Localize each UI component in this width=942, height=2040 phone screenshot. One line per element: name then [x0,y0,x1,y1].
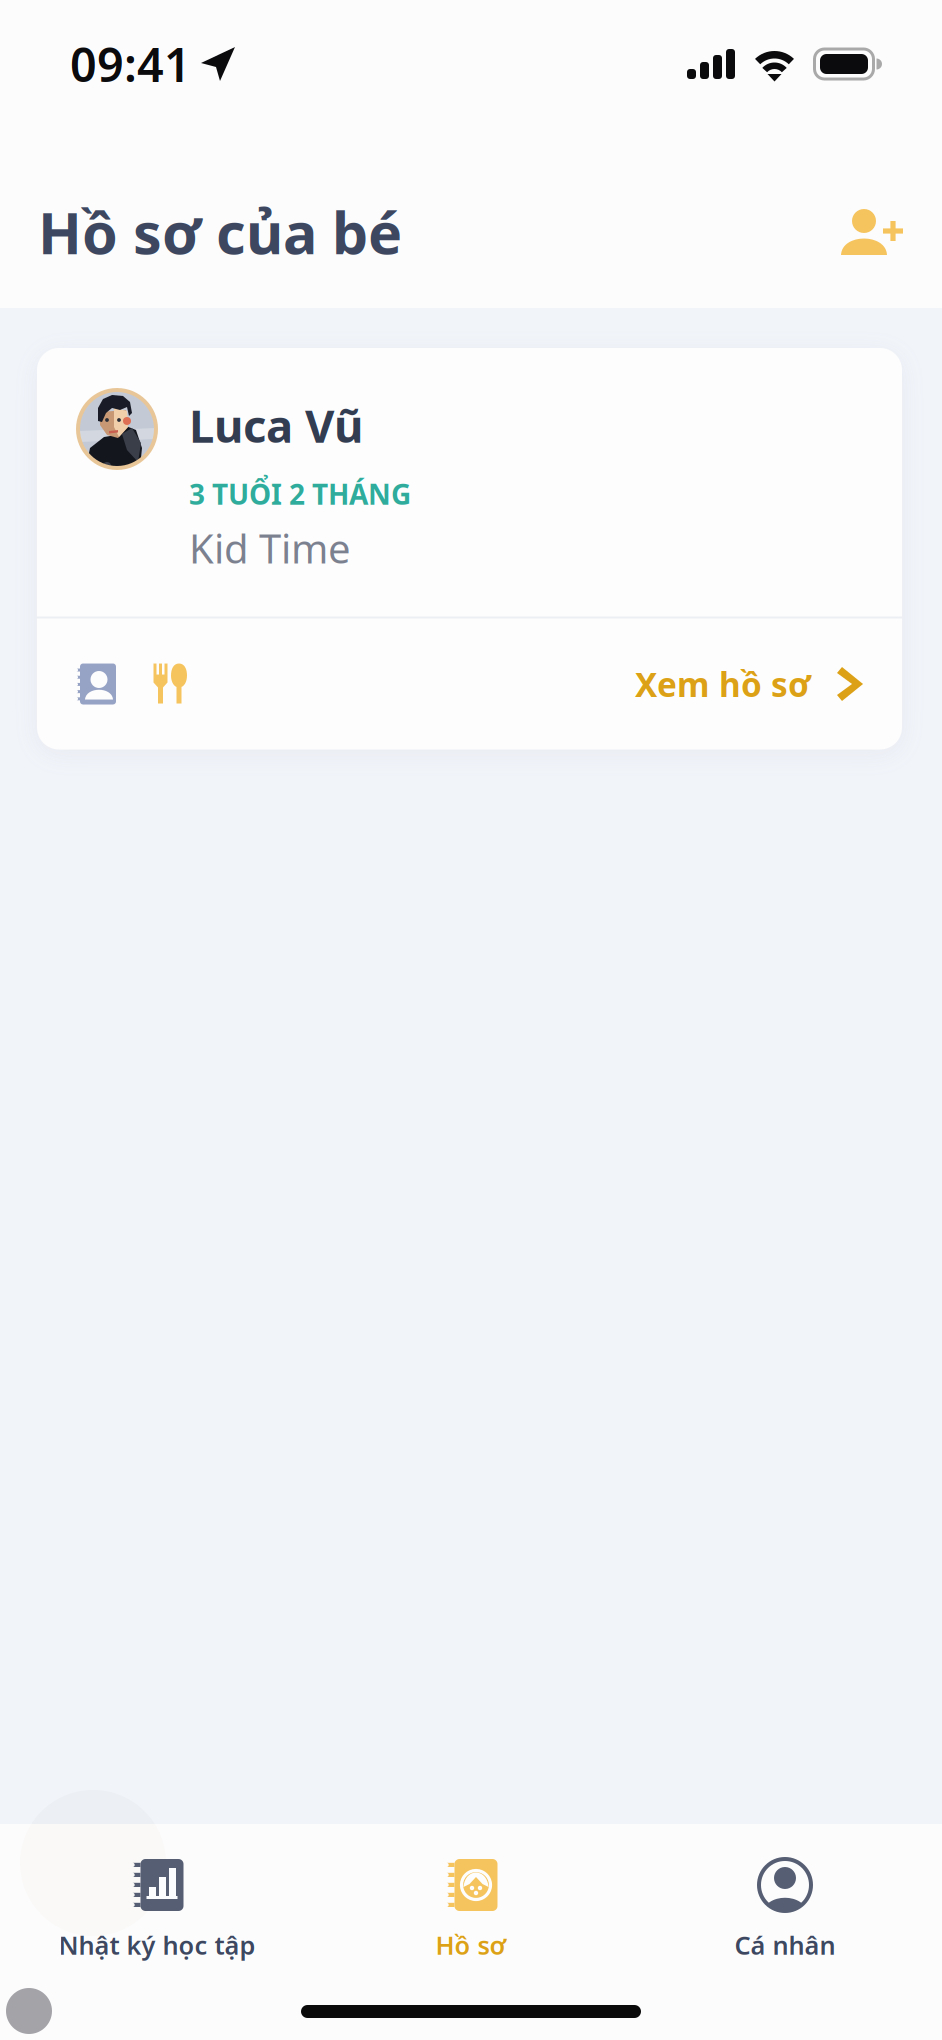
button[interactable]: Nhật ký học tập [0,1824,314,1981]
button[interactable]: Luca Vũ [37,348,902,616]
button[interactable]: Meals [153,663,188,704]
staticText: 09:41 [70,33,191,95]
staticText: Kid Time [189,521,351,574]
staticText: Xem hồ sơ [635,662,811,706]
button[interactable]: Hồ sơ [314,1824,628,1981]
button[interactable]: Contact details [75,663,116,704]
button[interactable]: Xem hồ sơ [635,662,864,706]
staticText: 3 TUỔI 2 THÁNG [189,475,411,512]
staticText: Hồ sơ [435,1928,506,1962]
staticText: Nhật ký học tập [58,1928,255,1962]
staticText: Cá nhân [734,1928,835,1962]
staticText: Hồ sơ của bé [38,194,402,270]
staticText: Luca Vũ [189,395,363,455]
button[interactable]: Cá nhân [628,1824,942,1981]
button[interactable]: Add child [817,187,942,277]
